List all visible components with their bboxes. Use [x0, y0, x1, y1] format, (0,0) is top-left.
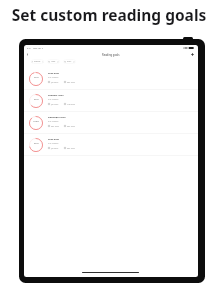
staticText: 5 of 5 books	[48, 120, 59, 122]
staticText: 2023 Goal	[48, 72, 60, 75]
staticText: Dec 2022	[67, 147, 75, 149]
staticText: Year	[51, 60, 56, 63]
staticText: Summer 2023	[48, 94, 64, 97]
button[interactable]: 30%	[24, 68, 198, 90]
staticText: 30%	[34, 75, 39, 78]
staticText: Dec 2023	[67, 81, 75, 83]
staticText: December 2023	[48, 116, 66, 119]
staticText: 4 of 5 books	[48, 142, 59, 144]
staticText: Set custom reading goals	[0, 4, 220, 25]
staticText: 3 of 5 books	[48, 76, 59, 78]
staticText: Jan 2022	[51, 147, 59, 149]
staticText: Mon Apr 3	[33, 47, 43, 50]
staticText: 60%	[34, 97, 39, 100]
staticText: Jan 2023	[51, 81, 59, 83]
button[interactable]: Add goal	[191, 53, 194, 56]
staticText: 100%	[33, 119, 40, 122]
staticText: Status	[34, 60, 41, 63]
staticText: 80%	[34, 141, 39, 144]
button[interactable]: 100%	[24, 112, 198, 134]
button[interactable]: Year	[47, 59, 60, 64]
staticText: 9:41	[27, 47, 31, 50]
staticText: Dec 2023	[67, 125, 75, 127]
button[interactable]: Back	[26, 53, 29, 56]
staticText: Dec 2023	[51, 125, 59, 127]
staticText: Reading goals	[102, 53, 120, 57]
staticText: 2022 Goal	[48, 138, 60, 141]
button[interactable]: 80%	[24, 134, 198, 156]
staticText: 3 of 5 books	[48, 98, 59, 100]
button[interactable]: Status	[31, 59, 44, 64]
button[interactable]: 60%	[24, 90, 198, 112]
staticText: Jun 2023	[51, 103, 59, 105]
staticText: Aug 2023	[67, 103, 75, 105]
staticText: Sort	[67, 60, 72, 63]
button[interactable]: Sort	[63, 59, 76, 64]
